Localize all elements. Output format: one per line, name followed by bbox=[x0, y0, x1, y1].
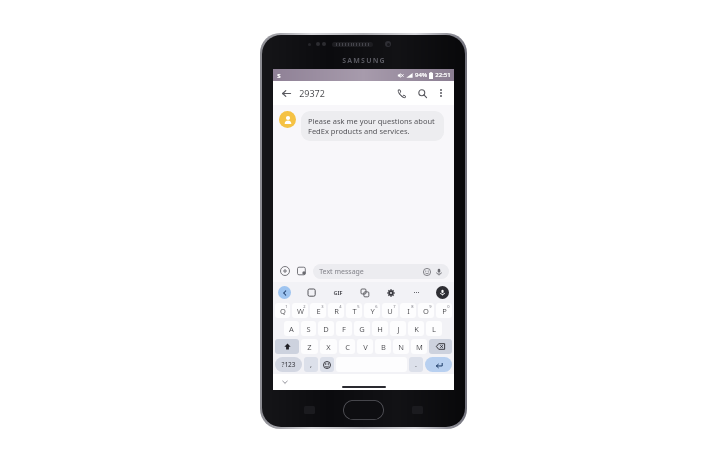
button[interactable]: . bbox=[409, 357, 423, 372]
staticText: U bbox=[387, 306, 393, 316]
button[interactable]: T bbox=[346, 303, 362, 318]
staticText: H bbox=[377, 324, 383, 334]
button[interactable]: P bbox=[436, 303, 452, 318]
button[interactable]: H bbox=[372, 321, 388, 336]
staticText: ?123 bbox=[281, 360, 296, 369]
button[interactable]: Translate bbox=[358, 286, 371, 299]
staticText: 6 bbox=[375, 304, 378, 309]
button[interactable]: GIF bbox=[331, 285, 345, 299]
staticText: Text message bbox=[319, 267, 364, 277]
staticText: Q bbox=[280, 306, 286, 316]
staticText: F bbox=[342, 324, 346, 334]
button[interactable]: V bbox=[357, 339, 373, 354]
button[interactable]: X bbox=[320, 339, 337, 354]
staticText: I bbox=[407, 306, 410, 316]
button[interactable]: Settings bbox=[384, 286, 397, 299]
staticText: B bbox=[381, 342, 386, 352]
button[interactable]: Voice input bbox=[436, 286, 449, 299]
staticText: Please ask me your questions about FedEx… bbox=[308, 116, 437, 136]
button[interactable]: Call bbox=[394, 86, 409, 101]
staticText: P bbox=[442, 306, 447, 316]
staticText: 94% bbox=[415, 71, 427, 79]
staticText: 0 bbox=[447, 304, 450, 309]
staticText: X bbox=[326, 342, 331, 352]
button[interactable]: A bbox=[284, 321, 299, 336]
button[interactable]: B bbox=[375, 339, 391, 354]
button[interactable]: More bbox=[410, 286, 423, 299]
staticText: W bbox=[297, 306, 304, 316]
staticText: 9 bbox=[429, 304, 432, 309]
staticText: 1 bbox=[285, 304, 288, 309]
staticText: O bbox=[423, 306, 429, 316]
button[interactable]: M bbox=[411, 339, 427, 354]
button[interactable]: E bbox=[310, 303, 326, 318]
button[interactable]: D bbox=[318, 321, 334, 336]
button[interactable]: More options bbox=[434, 86, 448, 100]
staticText: 2 bbox=[303, 304, 306, 309]
staticText: L bbox=[432, 324, 436, 334]
button[interactable]: U bbox=[382, 303, 398, 318]
button[interactable]: I bbox=[400, 303, 416, 318]
button[interactable]: Q bbox=[275, 303, 290, 318]
staticText: A bbox=[289, 324, 294, 334]
button[interactable]: L bbox=[426, 321, 442, 336]
button[interactable]: Shift bbox=[275, 339, 299, 354]
button[interactable]: Enter bbox=[425, 357, 452, 372]
staticText: R bbox=[334, 306, 339, 316]
staticText: E bbox=[316, 306, 321, 316]
staticText: C bbox=[345, 342, 350, 352]
button[interactable]: K bbox=[408, 321, 424, 336]
staticText: D bbox=[323, 324, 329, 334]
button[interactable]: Backspace bbox=[429, 339, 452, 354]
staticText: . bbox=[415, 360, 417, 370]
button[interactable]: Text message bbox=[313, 264, 449, 279]
staticText: GIF bbox=[333, 289, 343, 296]
button[interactable]: Search bbox=[415, 86, 430, 101]
button[interactable]: Z bbox=[301, 339, 318, 354]
staticText: 22:51 bbox=[435, 71, 451, 79]
staticText: S bbox=[277, 72, 281, 78]
staticText: K bbox=[414, 324, 419, 334]
button[interactable]: Back bbox=[279, 86, 293, 100]
button[interactable]: Add attachment bbox=[278, 264, 292, 278]
staticText: Y bbox=[370, 306, 375, 316]
button[interactable]: , bbox=[304, 357, 318, 372]
staticText: , bbox=[310, 360, 312, 370]
staticText: 7 bbox=[393, 304, 396, 309]
staticText: S bbox=[306, 324, 311, 334]
staticText: J bbox=[397, 324, 400, 334]
button[interactable]: S bbox=[301, 321, 316, 336]
button[interactable]: Please ask me your questions about FedEx… bbox=[301, 111, 444, 141]
staticText: SAMSUNG bbox=[342, 56, 386, 66]
staticText: M bbox=[416, 342, 423, 352]
staticText: Z bbox=[307, 342, 312, 352]
staticText: G bbox=[359, 324, 365, 334]
staticText: V bbox=[363, 342, 368, 352]
button[interactable]: R bbox=[328, 303, 344, 318]
button[interactable]: Gallery bbox=[295, 264, 309, 278]
button[interactable]: F bbox=[336, 321, 352, 336]
button[interactable]: Hide keyboard bbox=[280, 377, 290, 387]
staticText: 5 bbox=[357, 304, 360, 309]
staticText: 3 bbox=[321, 304, 324, 309]
staticText: N bbox=[398, 342, 404, 352]
button[interactable]: O bbox=[418, 303, 434, 318]
staticText: 8 bbox=[411, 304, 414, 309]
button[interactable]: Emoji bbox=[320, 357, 334, 372]
button[interactable]: ?123 bbox=[275, 357, 302, 372]
button[interactable]: Home bbox=[343, 400, 384, 420]
staticText: T bbox=[352, 306, 357, 316]
button[interactable]: Stickers bbox=[305, 286, 318, 299]
staticText: 4 bbox=[339, 304, 342, 309]
button[interactable]: N bbox=[393, 339, 409, 354]
staticText: 29372 bbox=[299, 87, 325, 99]
button[interactable]: J bbox=[390, 321, 406, 336]
button[interactable]: Expand toolbar bbox=[278, 286, 291, 299]
button[interactable]: C bbox=[339, 339, 355, 354]
button[interactable]: Y bbox=[364, 303, 380, 318]
button[interactable]: W bbox=[292, 303, 308, 318]
button[interactable]: G bbox=[354, 321, 370, 336]
